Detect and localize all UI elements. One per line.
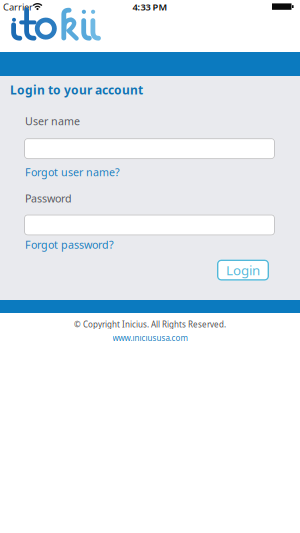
staticText: Forgot user name? bbox=[25, 165, 120, 179]
staticText: Carrier bbox=[3, 1, 33, 13]
staticText: © Copyright Inicius. All Rights Reserved… bbox=[74, 319, 226, 330]
staticText: Forgot password? bbox=[25, 237, 114, 252]
button[interactable]: Forgot user name? bbox=[25, 165, 120, 179]
button[interactable]: Login bbox=[217, 260, 269, 281]
staticText: Password bbox=[25, 191, 72, 205]
staticText: User name bbox=[25, 114, 80, 128]
staticText: Login bbox=[226, 261, 260, 279]
staticText: Login to your account bbox=[10, 82, 143, 98]
button[interactable]: Forgot password? bbox=[25, 237, 114, 252]
button[interactable]: www.iniciususa.com bbox=[112, 333, 187, 343]
staticText: www.iniciususa.com bbox=[112, 333, 187, 343]
staticText: 4:33 PM bbox=[132, 1, 167, 13]
